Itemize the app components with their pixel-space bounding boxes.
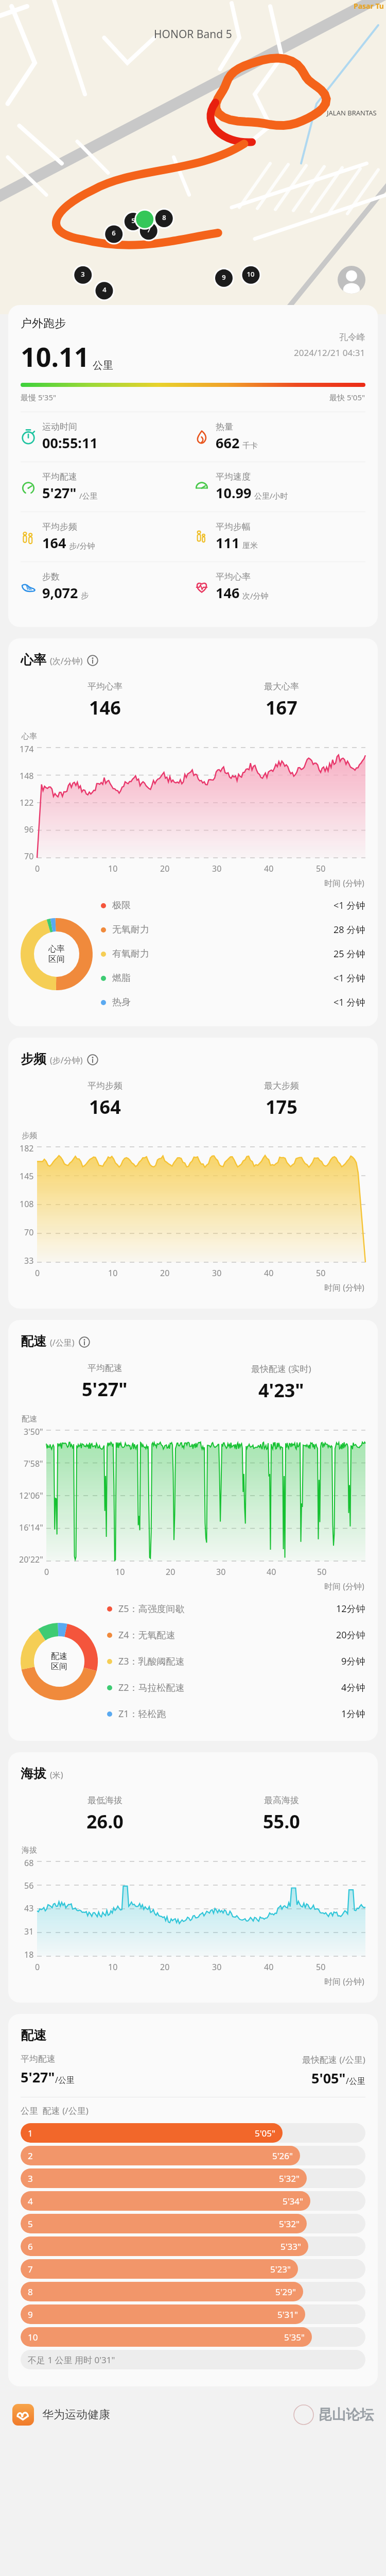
button[interactable]: Profile: [338, 266, 365, 294]
staticText: 146: [89, 695, 121, 720]
button[interactable]: Z5：高强度间歇: [107, 1602, 365, 1615]
staticText: 步频: [22, 1131, 37, 1141]
button[interactable]: 4: [21, 2191, 365, 2211]
staticText: Pasar Tu: [354, 1, 384, 11]
button[interactable]: Z4：无氧配速: [107, 1629, 365, 1641]
button[interactable]: Z3：乳酸阈配速: [107, 1655, 365, 1668]
button[interactable]: 极限: [101, 899, 365, 912]
staticText: 配速: [21, 1333, 46, 1349]
staticText: 7: [28, 2263, 33, 2275]
staticText: 步: [81, 591, 89, 601]
staticText: 最快配速 (/公里): [302, 2054, 365, 2065]
button[interactable]: 无氧耐力: [101, 923, 365, 936]
button[interactable]: Z1：轻松跑: [107, 1707, 365, 1720]
staticText: 平均心率: [216, 571, 251, 582]
staticText: 40: [264, 1267, 274, 1279]
staticText: 33: [24, 1255, 34, 1266]
button[interactable]: 3: [21, 2168, 365, 2188]
staticText: 华为运动健康: [42, 2408, 110, 2422]
button[interactable]: Info: [87, 653, 98, 666]
staticText: 不足 1 公里 用时 0'31": [28, 2354, 115, 2366]
staticText: 4分钟: [341, 1681, 365, 1694]
button[interactable]: 10: [21, 2327, 365, 2347]
button[interactable]: 平均配速: [20, 471, 193, 502]
staticText: 区间: [51, 1662, 67, 1672]
staticText: 平均配速: [42, 471, 77, 482]
staticText: 7: [142, 225, 155, 234]
button[interactable]: 平均速度: [193, 471, 366, 502]
staticText: 148: [20, 770, 34, 782]
staticText: 时间 (分钟): [324, 1976, 364, 1987]
staticText: 最低海拔: [87, 1795, 122, 1806]
staticText: 30: [212, 863, 222, 874]
button[interactable]: 有氧耐力: [101, 947, 365, 960]
staticText: 12分钟: [336, 1602, 365, 1615]
staticText: 5: [127, 216, 140, 225]
staticText: 燃脂: [112, 972, 131, 984]
staticText: 平均速度: [216, 471, 251, 482]
button[interactable]: Info: [87, 1053, 98, 1065]
button[interactable]: 7: [21, 2259, 365, 2279]
button[interactable]: 步数: [20, 571, 193, 602]
staticText: 00:55:11: [42, 433, 98, 452]
button[interactable]: 8: [21, 2282, 365, 2301]
button[interactable]: 不足 1 公里 用时 0'31": [21, 2350, 365, 2369]
button[interactable]: 平均心率: [193, 571, 366, 602]
staticText: 5'23": [270, 2263, 291, 2275]
staticText: 最快配速 (实时): [251, 1363, 311, 1375]
staticText: 0: [35, 863, 40, 874]
staticText: 30: [212, 1267, 222, 1279]
button[interactable]: 9: [21, 2304, 365, 2324]
staticText: /公里: [55, 2074, 75, 2086]
staticText: 公里: [93, 359, 113, 372]
staticText: 热身: [112, 996, 131, 1008]
button[interactable]: Huawei Health: [12, 2404, 34, 2426]
staticText: 70: [24, 1227, 34, 1238]
staticText: /公里: [79, 490, 98, 501]
staticText: 4'23": [258, 1378, 304, 1403]
staticText: 10: [108, 1961, 118, 1973]
button[interactable]: 6: [21, 2236, 365, 2256]
staticText: 无氧耐力: [112, 924, 149, 936]
staticText: 10: [244, 269, 257, 279]
staticText: 10: [115, 1566, 125, 1578]
staticText: 50: [317, 1566, 327, 1578]
staticText: 50: [316, 863, 326, 874]
staticText: 平均步频: [87, 1080, 122, 1091]
staticText: 662: [216, 433, 240, 452]
staticText: 18: [24, 1949, 34, 1960]
staticText: 6: [28, 2241, 33, 2252]
staticText: 9分钟: [341, 1655, 365, 1668]
staticText: 20: [160, 1961, 170, 1973]
button[interactable]: 热量: [193, 421, 366, 452]
button[interactable]: 2: [21, 2146, 365, 2165]
button[interactable]: Info: [79, 1335, 90, 1348]
staticText: 28 分钟: [334, 923, 365, 936]
staticText: 5'27": [42, 483, 77, 502]
button[interactable]: Z2：马拉松配速: [107, 1681, 365, 1694]
staticText: 5'32": [279, 2173, 300, 2184]
staticText: 海拔: [22, 1845, 37, 1855]
button[interactable]: 平均步频: [20, 521, 193, 552]
staticText: Z5：高强度间歇: [118, 1602, 185, 1615]
button[interactable]: 5: [21, 2214, 365, 2233]
staticText: 56: [24, 1880, 34, 1891]
staticText: 8: [28, 2286, 33, 2298]
staticText: 20: [166, 1566, 176, 1578]
staticText: 4: [28, 2195, 33, 2207]
button[interactable]: 平均步幅: [193, 521, 366, 552]
button[interactable]: 运动时间: [20, 421, 193, 452]
staticText: 最快 5'05": [329, 392, 365, 402]
staticText: 10: [108, 863, 118, 874]
button[interactable]: 热身: [101, 996, 365, 1009]
staticText: 1分钟: [341, 1707, 365, 1720]
staticText: /公里: [346, 2075, 365, 2087]
staticText: 6: [107, 228, 120, 238]
staticText: 5'33": [280, 2241, 301, 2252]
staticText: 户外跑步: [21, 316, 66, 331]
button[interactable]: 燃脂: [101, 972, 365, 985]
button[interactable]: 1: [21, 2123, 365, 2143]
staticText: 25 分钟: [334, 947, 365, 960]
staticText: 68: [24, 1857, 34, 1869]
staticText: 配速: [22, 1414, 37, 1424]
